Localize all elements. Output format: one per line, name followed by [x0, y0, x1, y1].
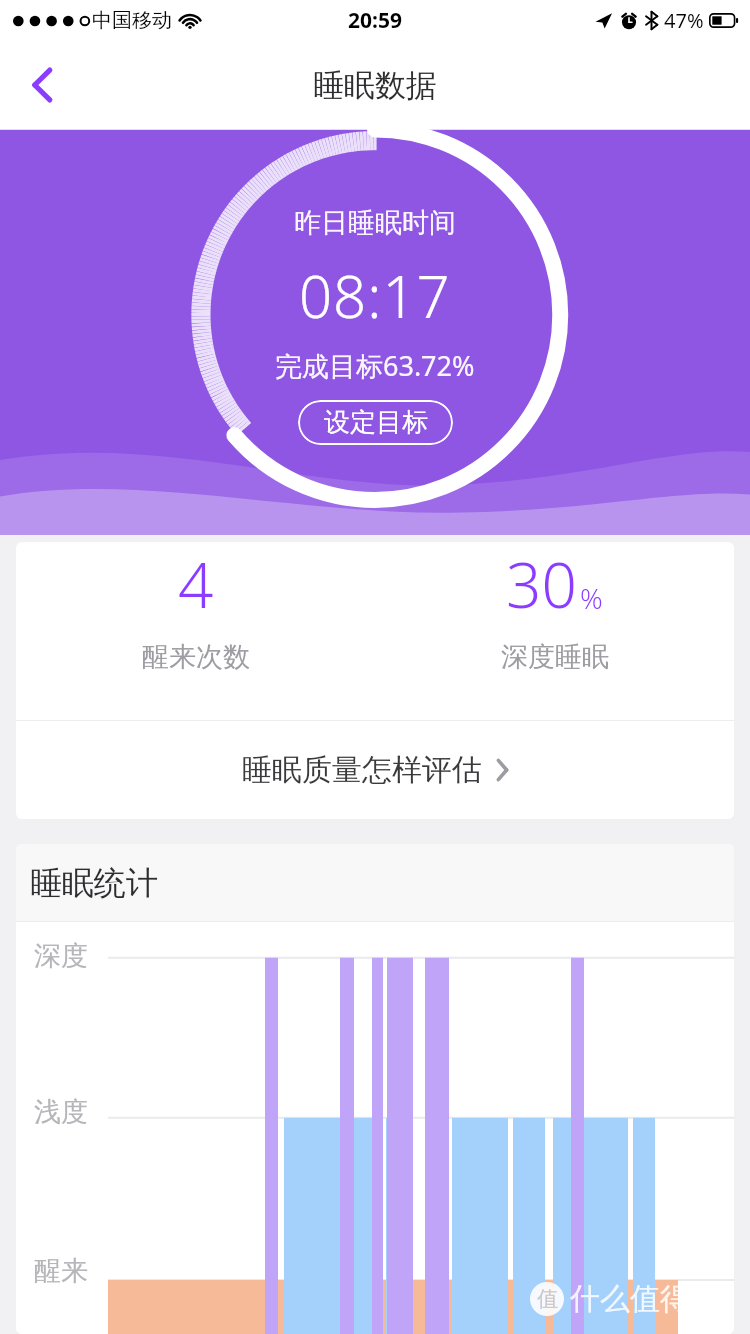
staticText: 什么值得买: [570, 1280, 720, 1318]
button[interactable]: Back: [10, 53, 74, 117]
staticText: 深度睡眠: [501, 640, 609, 674]
staticText: 设定目标: [324, 406, 428, 439]
staticText: 浅度: [34, 1095, 88, 1129]
staticText: 完成目标63.72%: [275, 347, 475, 384]
button[interactable]: 睡眠质量怎样评估: [16, 721, 734, 819]
button[interactable]: 设定目标: [298, 400, 453, 445]
staticText: 醒来: [34, 1254, 88, 1288]
staticText: 睡眠质量怎样评估: [242, 751, 482, 789]
staticText: 20:59: [348, 6, 402, 35]
button[interactable]: 30: [375, 542, 734, 674]
button[interactable]: 4: [16, 542, 375, 674]
staticText: 昨日睡眠时间: [294, 206, 456, 240]
staticText: 值: [537, 1286, 558, 1312]
staticText: 4: [178, 542, 214, 626]
staticText: 30: [506, 542, 577, 626]
staticText: 深度: [34, 939, 88, 973]
staticText: 睡眠统计: [30, 863, 158, 903]
staticText: %: [580, 579, 603, 617]
staticText: 睡眠数据: [313, 66, 437, 105]
staticText: 醒来次数: [142, 640, 250, 674]
staticText: 08:17: [299, 256, 451, 335]
staticText: 中国移动: [92, 8, 172, 33]
staticText: 47%: [664, 7, 704, 34]
